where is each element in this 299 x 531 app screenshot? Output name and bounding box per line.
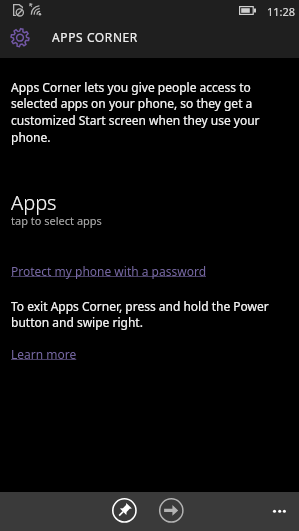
button[interactable]: Settings (10, 28, 30, 48)
staticText: APPS CORNER (52, 29, 138, 45)
button[interactable]: Apps (0, 189, 299, 231)
staticText: tap to select apps (11, 213, 102, 228)
button[interactable]: Pin to Start (110, 496, 139, 525)
staticText: Learn more (11, 346, 77, 362)
staticText: To exit Apps Corner, press and hold the … (11, 298, 276, 331)
button[interactable]: Learn more (11, 346, 77, 362)
button[interactable]: More options (264, 501, 295, 522)
button[interactable]: Protect my phone with a password (11, 263, 207, 279)
staticText: Apps Corner lets you give people access … (11, 79, 276, 146)
staticText: 11:28 (267, 4, 296, 19)
button[interactable]: Next (157, 496, 186, 525)
staticText: Apps (11, 189, 57, 216)
staticText: Protect my phone with a password (11, 263, 207, 279)
